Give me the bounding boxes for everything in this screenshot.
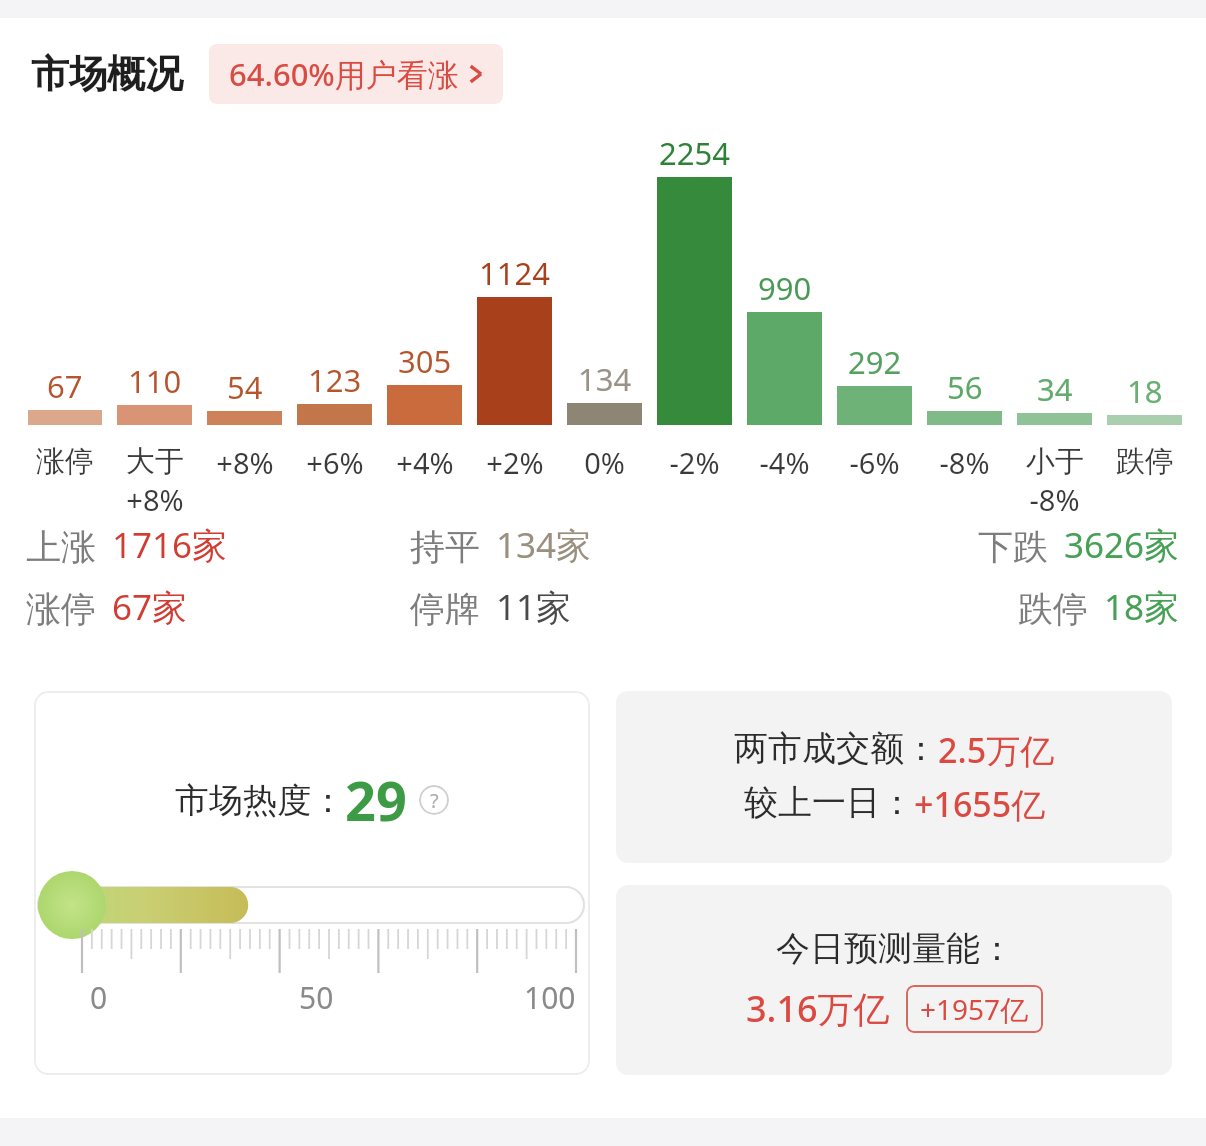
staticText: 11家 (496, 583, 572, 631)
staticText: 3626家 (1064, 521, 1180, 569)
staticText: -8% (1029, 480, 1080, 513)
button[interactable]: 64.60%用户看涨 (209, 44, 503, 104)
staticText: 292 (848, 341, 902, 383)
staticText: 上涨 (26, 525, 96, 569)
staticText: 持平 (410, 525, 480, 569)
staticText: +1655亿 (914, 781, 1046, 827)
staticText: +4% (396, 443, 454, 482)
staticText: 0 (90, 977, 108, 1018)
staticText: 小于 (1026, 443, 1084, 480)
staticText: -8% (939, 443, 990, 482)
staticText: -4% (759, 443, 810, 482)
staticText: ? (430, 787, 439, 814)
staticText: 2.5万亿 (938, 727, 1055, 773)
staticText: 停牌 (410, 587, 480, 631)
staticText: 3.16万亿 (746, 984, 890, 1033)
staticText: 1124 (479, 252, 550, 294)
staticText: 下跌 (978, 525, 1048, 569)
staticText: 18家 (1104, 583, 1180, 631)
staticText: 跌停 (1018, 587, 1088, 631)
staticText: +8% (216, 443, 274, 482)
staticText: +1957亿 (920, 990, 1029, 1028)
staticText: 67家 (112, 583, 188, 631)
staticText: 67 (47, 365, 83, 407)
button[interactable]: 市场热度： (34, 691, 590, 1075)
staticText: 34 (1037, 368, 1073, 410)
staticText: 50 (299, 977, 334, 1018)
staticText: 两市成交额： (734, 727, 938, 770)
staticText: 2254 (659, 132, 730, 174)
staticText: 1716家 (112, 521, 228, 569)
button[interactable]: 今日预测量能： (616, 885, 1172, 1075)
staticText: 305 (398, 340, 452, 382)
staticText: 市场概况 (31, 50, 183, 98)
button[interactable]: Help (419, 785, 449, 815)
staticText: -6% (849, 443, 900, 482)
staticText: 跌停 (1116, 443, 1174, 480)
staticText: 64.60%用户看涨 (229, 53, 459, 95)
staticText: 较上一日： (744, 781, 914, 824)
staticText: 今日预测量能： (776, 927, 1014, 970)
staticText: 18 (1127, 370, 1163, 412)
staticText: 134家 (496, 521, 592, 569)
staticText: 100 (524, 977, 576, 1018)
staticText: 涨停 (36, 443, 94, 480)
staticText: 123 (308, 359, 362, 401)
staticText: 990 (758, 267, 812, 309)
staticText: 0% (584, 443, 625, 482)
staticText: 大于 (126, 443, 184, 480)
staticText: 市场热度： (175, 779, 345, 822)
staticText: 134 (578, 358, 632, 400)
staticText: 54 (227, 366, 263, 408)
staticText: +2% (486, 443, 544, 482)
staticText: +8% (126, 480, 184, 513)
button[interactable]: 两市成交额： (616, 691, 1172, 863)
staticText: 110 (128, 360, 182, 402)
staticText: 29 (345, 763, 407, 837)
staticText: +6% (306, 443, 364, 482)
staticText: -2% (669, 443, 720, 482)
staticText: 涨停 (26, 587, 96, 631)
staticText: 56 (947, 366, 983, 408)
